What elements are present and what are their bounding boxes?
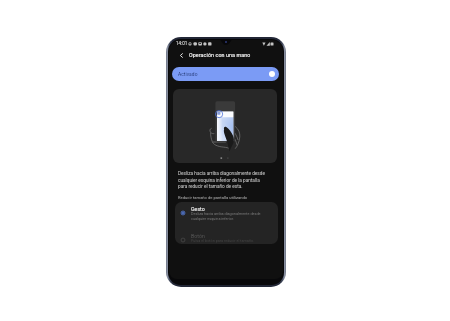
staticText: Operación con una mano	[189, 52, 251, 58]
button[interactable]: Gesto	[175, 202, 278, 228]
button[interactable]: Activado	[172, 67, 279, 81]
staticText: Botón	[191, 233, 205, 239]
staticText: Reducir tamaño de pantalla utilizando	[178, 195, 248, 200]
staticText: Activado	[178, 71, 198, 77]
staticText: 14:01	[176, 41, 188, 46]
staticText: Desliza hacia arriba diagonalmente desde…	[178, 171, 267, 189]
staticText: Desliza hacia arriba diagonalmente desde…	[191, 212, 267, 220]
button[interactable]: Botón	[175, 228, 278, 244]
staticText: Gesto	[191, 206, 205, 212]
staticText: Pulsa el botón para reducir el tamaño.	[191, 239, 267, 243]
button[interactable]: Back	[176, 50, 187, 61]
